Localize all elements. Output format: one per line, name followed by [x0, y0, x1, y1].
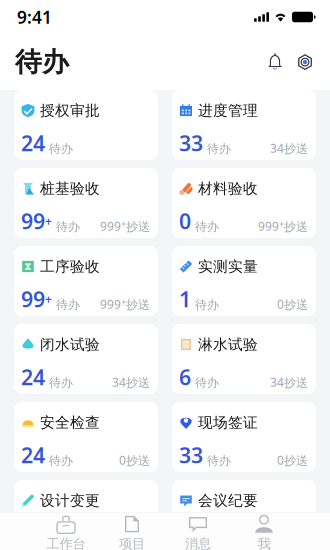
staticText: 淋水试验 [198, 335, 258, 353]
button[interactable]: 授权审批 [14, 90, 158, 160]
button[interactable]: 项目 [99, 512, 165, 550]
staticText: 999 [100, 296, 121, 312]
staticText: 34抄送 [270, 140, 308, 156]
staticText: 99 [21, 207, 45, 235]
staticText: 待办 [207, 141, 231, 156]
staticText: 待办 [25, 531, 49, 546]
staticText: 待办 [15, 46, 69, 78]
staticText: 待办 [49, 141, 73, 156]
staticText: + [121, 296, 126, 308]
button[interactable]: 我 [231, 512, 297, 550]
staticText: 项目 [119, 536, 145, 550]
staticText: 99 [21, 285, 45, 313]
button[interactable]: 桩基验收 [14, 168, 158, 238]
staticText: 现场签证 [198, 413, 258, 431]
staticText: + [121, 218, 126, 230]
staticText: 工作台 [46, 536, 85, 550]
button[interactable]: 通知 [260, 47, 290, 77]
staticText: 待办 [56, 297, 80, 312]
staticText: 进度管理 [198, 101, 258, 119]
staticText: 抄送 [126, 297, 150, 312]
staticText: 待办 [195, 297, 219, 312]
staticText: 材料验收 [198, 179, 258, 197]
staticText: 实测实量 [198, 257, 258, 275]
staticText: 待办 [49, 375, 73, 390]
staticText: 待办 [195, 375, 219, 390]
button[interactable]: 现场签证 [172, 402, 316, 472]
button[interactable]: 设置 [290, 47, 320, 77]
staticText: 24 [21, 363, 45, 391]
staticText: 33 [179, 441, 203, 469]
staticText: 工序验收 [40, 257, 100, 275]
button[interactable]: 会议纪要 [172, 480, 316, 550]
staticText: 999 [100, 218, 121, 234]
button[interactable]: 消息 [165, 512, 231, 550]
staticText: + [279, 218, 284, 230]
button[interactable]: 进度管理 [172, 90, 316, 160]
staticText: 待办 [195, 219, 219, 234]
button[interactable]: 闭水试验 [14, 324, 158, 394]
button[interactable]: 实测实量 [172, 246, 316, 316]
staticText: 抄送 [284, 219, 308, 234]
staticText: 会议纪要 [198, 491, 258, 509]
staticText: 0抄送 [119, 452, 150, 468]
button[interactable]: 材料验收 [172, 168, 316, 238]
staticText: 0抄送 [277, 296, 308, 312]
staticText: 安全检查 [40, 413, 100, 431]
staticText: 34抄送 [270, 374, 308, 390]
staticText: 桩基验收 [40, 179, 100, 197]
button[interactable]: 工序验收 [14, 246, 158, 316]
staticText: 设计变更 [40, 491, 100, 509]
staticText: 1 [179, 285, 191, 313]
staticText: 0 [179, 207, 191, 235]
staticText: 我 [257, 536, 270, 550]
staticText: 999 [258, 218, 279, 234]
staticText: 9:41 [17, 5, 52, 28]
button[interactable]: 设计变更 [14, 480, 158, 550]
staticText: 待办 [49, 453, 73, 468]
staticText: 待办 [56, 219, 80, 234]
staticText: 授权审批 [40, 101, 100, 119]
staticText: 6 [179, 363, 191, 391]
staticText: 0抄送 [277, 452, 308, 468]
button[interactable]: 安全检查 [14, 402, 158, 472]
staticText: 33 [179, 129, 203, 157]
staticText: + [45, 213, 52, 229]
staticText: 待办 [183, 531, 207, 546]
staticText: 抄送 [126, 219, 150, 234]
staticText: 34抄送 [112, 374, 150, 390]
staticText: 24 [21, 441, 45, 469]
staticText: 消息 [185, 536, 211, 550]
staticText: + [45, 291, 52, 307]
staticText: 24 [21, 129, 45, 157]
staticText: 待办 [207, 453, 231, 468]
staticText: 闭水试验 [40, 335, 100, 353]
button[interactable]: 淋水试验 [172, 324, 316, 394]
button[interactable]: 工作台 [33, 512, 99, 550]
